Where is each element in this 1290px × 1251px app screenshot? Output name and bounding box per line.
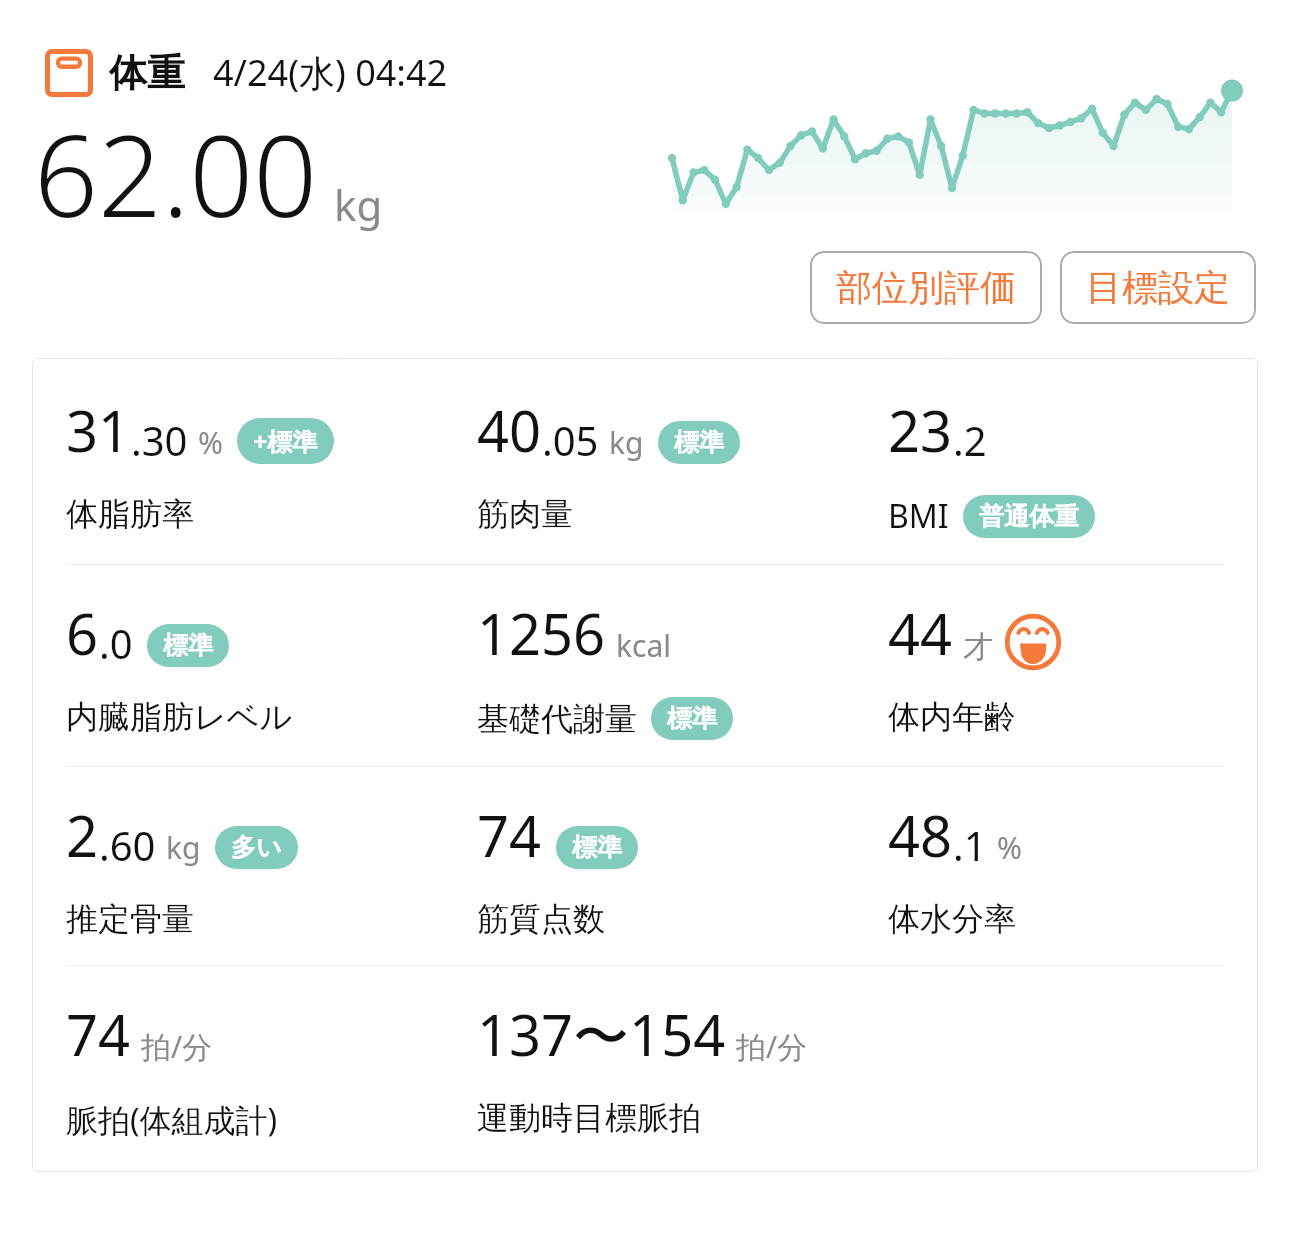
staticText: 推定骨量 [66,899,194,939]
staticText: 標準 [163,630,213,661]
staticText: 才 [963,628,993,666]
button[interactable]: 31 [66,392,477,534]
staticText: % [198,422,223,463]
button[interactable]: 48 [888,797,1258,939]
staticText: kcal [616,625,671,666]
staticText: 普通体重 [979,501,1079,532]
staticText: 基礎代謝量 [477,699,637,739]
staticText: 62.00 [34,97,318,247]
staticText: 多い [231,832,282,863]
staticText: 標準 [674,427,724,458]
staticText: +標準 [253,424,318,458]
staticText: .05 [542,413,599,467]
button[interactable]: 40 [477,392,888,534]
staticText: 23 [888,392,953,468]
staticText: 74 [477,797,542,873]
staticText: .1 [953,818,987,872]
staticText: 標準 [572,832,622,863]
staticText: 31 [66,392,131,468]
staticText: .2 [953,413,987,467]
staticText: 体重 [109,49,185,97]
staticText: 40 [477,392,542,468]
other: Weight scale [45,49,93,97]
staticText: kg [334,176,383,233]
button[interactable]: 74 [477,797,888,939]
staticText: 137〜154 [477,996,726,1072]
staticText: 内臓脂肪レベル [66,697,293,737]
button[interactable]: 目標設定 [1060,251,1256,324]
staticText: 体内年齢 [888,697,1016,737]
staticText: 4/24(水) 04:42 [213,48,448,97]
staticText: kg [166,827,201,868]
staticText: 44 [888,595,953,671]
staticText: 1256 [477,595,606,671]
staticText: 目標設定 [1086,265,1230,310]
staticText: 脈拍(体組成計) [66,1098,278,1142]
staticText: 6 [66,595,99,671]
button[interactable]: 23 [888,392,1258,538]
staticText: 部位別評価 [836,265,1016,310]
button[interactable]: 44 [888,595,1258,737]
staticText: 体水分率 [888,899,1016,939]
button[interactable]: 部位別評価 [810,251,1042,324]
staticText: 48 [888,797,953,873]
staticText: 74 [66,996,131,1072]
button[interactable]: 137〜154 [477,996,1258,1138]
staticText: 体脂肪率 [66,494,194,534]
staticText: .0 [99,616,133,670]
staticText: 2 [66,797,99,873]
staticText: 筋質点数 [477,899,605,939]
staticText: 標準 [667,703,717,734]
staticText: 筋肉量 [477,494,573,534]
button[interactable]: 74 [66,996,477,1142]
staticText: .30 [131,413,188,467]
staticText: 運動時目標脈拍 [477,1098,701,1138]
button[interactable]: 2 [66,797,477,939]
staticText: kg [609,422,644,463]
button[interactable]: 1256 [477,595,888,740]
button[interactable]: 6 [66,595,477,737]
staticText: .60 [99,818,156,872]
staticText: % [997,827,1022,868]
staticText: BMI [888,494,949,538]
staticText: 拍/分 [141,1026,213,1067]
staticText: 拍/分 [736,1026,808,1067]
